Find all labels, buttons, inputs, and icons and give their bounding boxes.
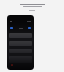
button[interactable]: Item 2 [9,41,32,46]
button[interactable]: Item 3 [9,49,32,53]
button[interactable]: Back [10,27,13,29]
button[interactable]: Item 1 [9,33,32,38]
button[interactable]: Delete [11,64,13,66]
button[interactable]: Edit [28,27,31,29]
